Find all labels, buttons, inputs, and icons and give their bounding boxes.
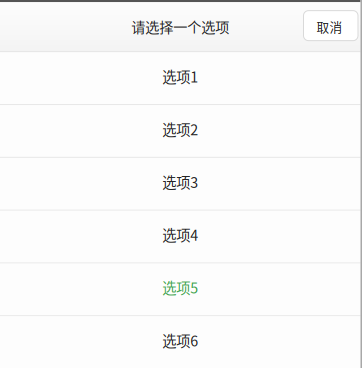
staticText: 取消 (317, 17, 343, 36)
staticText: 选项3 (162, 171, 198, 192)
button[interactable]: 选项5 (0, 263, 360, 315)
staticText: 选项5 (162, 277, 198, 298)
staticText: 选项4 (162, 224, 198, 245)
button[interactable]: 选项1 (0, 52, 360, 104)
button[interactable]: 选项4 (0, 211, 360, 262)
staticText: 选项6 (162, 330, 198, 351)
staticText: 请选择一个选项 (131, 16, 229, 37)
staticText: 选项1 (162, 66, 198, 87)
button[interactable]: 选项2 (0, 105, 360, 157)
button[interactable]: 取消 (303, 11, 358, 41)
button[interactable]: 选项6 (0, 316, 360, 368)
button[interactable]: 选项3 (0, 158, 360, 210)
staticText: 选项2 (162, 119, 198, 139)
